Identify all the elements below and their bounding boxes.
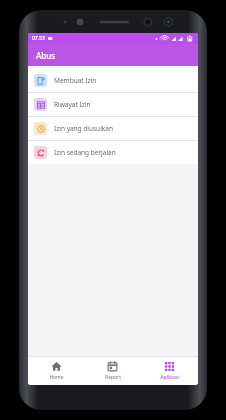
staticText: Home (49, 374, 64, 381)
button[interactable]: Izin yang diusulkan (28, 117, 198, 140)
staticText: Abus (36, 50, 56, 61)
staticText: 07.53 (32, 35, 45, 42)
staticText: Izin sedang berjalan (54, 148, 116, 157)
staticText: Riwayat Izin (54, 100, 91, 109)
button[interactable]: Aplikasi (141, 357, 198, 385)
button[interactable]: Izin sedang berjalan (28, 141, 198, 164)
button[interactable]: Membuat Izin (28, 69, 198, 92)
button[interactable]: Riwayat Izin (28, 93, 198, 116)
staticText: Report (105, 374, 121, 381)
staticText: Izin yang diusulkan (54, 124, 113, 133)
button[interactable]: Abus (28, 44, 198, 66)
button[interactable]: Home (28, 357, 84, 385)
staticText: Aplikasi (160, 374, 179, 381)
staticText: Membuat Izin (54, 76, 97, 85)
button[interactable]: Report (84, 357, 141, 385)
